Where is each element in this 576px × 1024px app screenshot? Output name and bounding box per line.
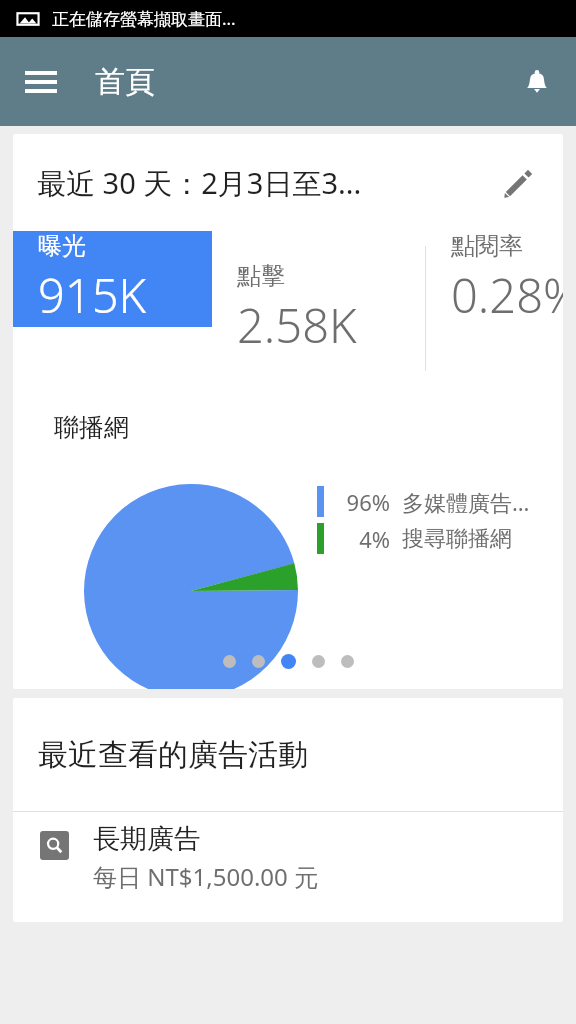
staticText: 最近 30 天：2月3日至3...	[37, 163, 497, 203]
staticText: 4%	[359, 524, 390, 554]
staticText: 曝光	[38, 231, 86, 261]
button[interactable]: Notifications	[510, 55, 564, 109]
button[interactable]: 長期廣告	[13, 812, 563, 922]
button[interactable]: 最近 30 天：2月3日至3...	[13, 134, 563, 231]
staticText: 長期廣告	[93, 822, 201, 856]
button[interactable]	[281, 654, 296, 669]
staticText: 點擊	[237, 261, 285, 291]
staticText: 915K	[38, 263, 147, 327]
button[interactable]	[312, 655, 325, 668]
button[interactable]: 聯播網	[13, 386, 563, 639]
button[interactable]: 最近查看的廣告活動	[13, 698, 563, 811]
button[interactable]: 曝光	[13, 231, 212, 327]
button[interactable]: 點閱率	[426, 231, 563, 327]
staticText: 首頁	[95, 63, 155, 101]
staticText: 2.58K	[237, 293, 357, 357]
button[interactable]	[252, 655, 265, 668]
staticText: 0.28%	[451, 263, 563, 327]
button[interactable]	[223, 655, 236, 668]
staticText: 每日 NT$1,500.00 元	[93, 860, 319, 893]
staticText: 聯播網	[54, 412, 129, 443]
button[interactable]	[341, 655, 354, 668]
staticText: 多媒體廣告…	[402, 487, 530, 517]
button[interactable]: Open navigation menu	[14, 55, 68, 109]
staticText: 最近查看的廣告活動	[38, 736, 308, 774]
staticText: 96%	[346, 487, 390, 517]
staticText: 搜尋聯播網	[402, 525, 512, 553]
staticText: 正在儲存螢幕擷取畫面...	[52, 7, 236, 30]
staticText: 點閱率	[451, 231, 523, 261]
button[interactable]: Edit date range	[497, 161, 541, 205]
button[interactable]: 點擊	[212, 231, 426, 386]
